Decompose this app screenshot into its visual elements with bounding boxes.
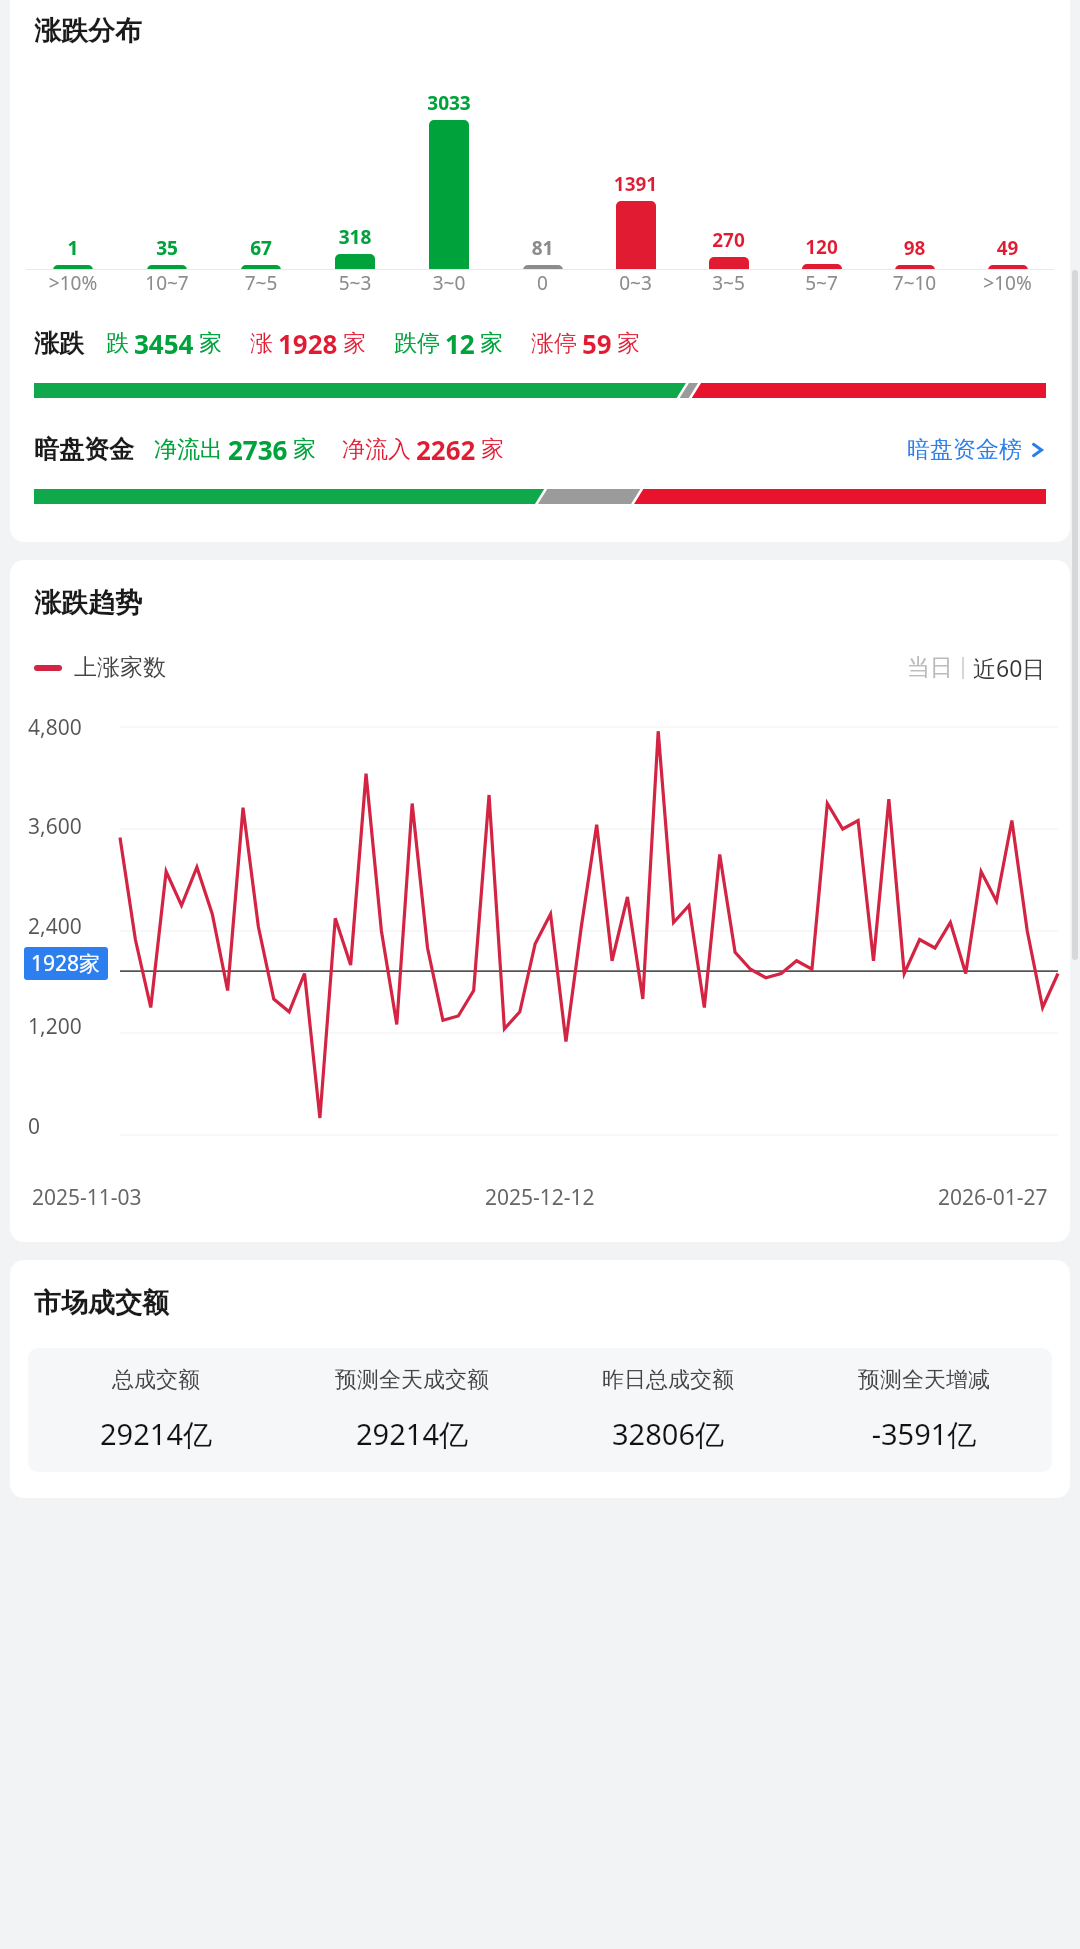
staticText: 1928家: [31, 949, 101, 978]
staticText: 2,400: [28, 912, 82, 941]
button[interactable]: 暗盘资金: [10, 432, 1070, 467]
staticText: 12: [445, 326, 475, 361]
staticText: 当日: [907, 653, 953, 682]
staticText: 4,800: [28, 713, 82, 742]
staticText: 35: [120, 235, 214, 261]
staticText: 暗盘资金: [34, 434, 134, 465]
staticText: 跌停: [394, 329, 440, 358]
staticText: 涨停: [531, 329, 577, 358]
staticText: 1: [26, 235, 120, 261]
staticText: 净流出: [154, 435, 223, 464]
staticText: 2262: [416, 432, 476, 467]
staticText: 98: [868, 235, 961, 261]
staticText: 家: [617, 329, 640, 358]
staticText: 49: [961, 235, 1054, 261]
staticText: 29214亿: [284, 1414, 540, 1454]
staticText: 1,200: [28, 1012, 82, 1041]
staticText: 家: [293, 435, 316, 464]
staticText: 昨日总成交额: [540, 1366, 796, 1394]
staticText: 预测全天增减: [796, 1366, 1052, 1394]
staticText: 3~0: [402, 270, 496, 296]
staticText: 318: [308, 224, 402, 250]
staticText: 暗盘资金榜: [907, 435, 1022, 464]
button[interactable]: 当日: [907, 652, 1046, 683]
staticText: 市场成交额: [34, 1286, 169, 1320]
staticText: 1391: [589, 171, 682, 197]
staticText: 120: [775, 234, 868, 260]
staticText: 7~10: [868, 270, 961, 296]
staticText: 81: [496, 235, 589, 261]
staticText: 家: [480, 329, 503, 358]
staticText: 0: [28, 1112, 41, 1141]
staticText: 270: [682, 227, 775, 253]
staticText: 涨跌分布: [34, 14, 142, 48]
staticText: 7~5: [214, 270, 308, 296]
other: 更多: [1030, 439, 1046, 461]
staticText: 0: [496, 270, 589, 296]
staticText: 29214亿: [28, 1414, 284, 1454]
staticText: 2025-11-03: [32, 1183, 142, 1212]
staticText: 涨: [250, 329, 273, 358]
staticText: 涨跌趋势: [34, 586, 142, 620]
staticText: 家: [199, 329, 222, 358]
staticText: 32806亿: [540, 1414, 796, 1454]
staticText: 3,600: [28, 812, 82, 841]
staticText: 3~5: [682, 270, 775, 296]
staticText: 59: [582, 326, 612, 361]
staticText: 2025-12-12: [485, 1183, 595, 1212]
staticText: 1928: [278, 326, 338, 361]
staticText: -3591亿: [796, 1414, 1052, 1454]
staticText: 5~7: [775, 270, 868, 296]
staticText: 3454: [134, 326, 194, 361]
staticText: >10%: [961, 270, 1054, 296]
staticText: 10~7: [120, 270, 214, 296]
staticText: 5~3: [308, 270, 402, 296]
staticText: 家: [343, 329, 366, 358]
staticText: 预测全天成交额: [284, 1366, 540, 1394]
staticText: 总成交额: [28, 1366, 284, 1394]
staticText: 跌: [106, 329, 129, 358]
staticText: 上涨家数: [74, 653, 166, 682]
staticText: 2026-01-27: [938, 1183, 1048, 1212]
staticText: 涨跌: [34, 328, 84, 359]
staticText: 0~3: [589, 270, 682, 296]
staticText: 67: [214, 235, 308, 261]
staticText: 3033: [402, 90, 496, 116]
staticText: 2736: [228, 432, 288, 467]
staticText: 近60日: [973, 652, 1046, 683]
staticText: 家: [481, 435, 504, 464]
staticText: >10%: [26, 270, 120, 296]
staticText: 净流入: [342, 435, 411, 464]
